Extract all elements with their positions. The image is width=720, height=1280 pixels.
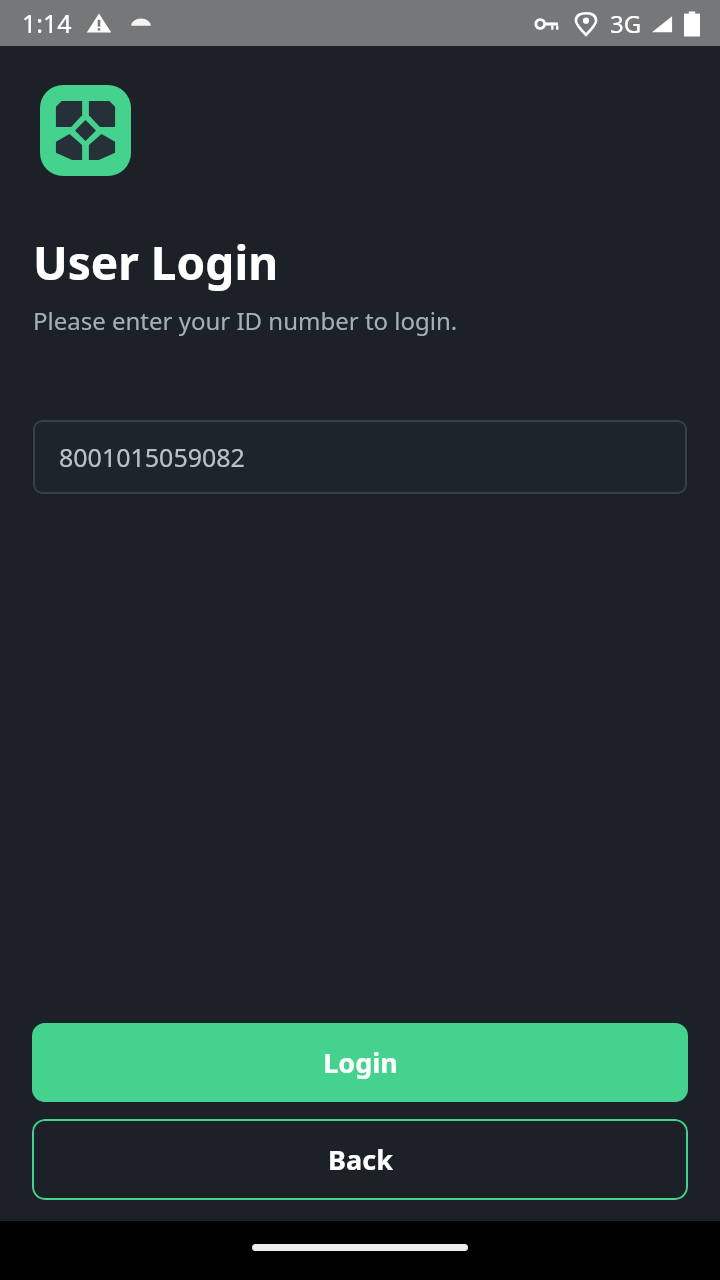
staticText: Please enter your ID number to login.: [33, 304, 458, 337]
staticText: Back: [328, 1141, 393, 1178]
staticText: 1:14: [22, 6, 72, 40]
other: App logo: [40, 85, 131, 176]
staticText: Login: [323, 1044, 398, 1081]
button[interactable]: Login: [32, 1023, 688, 1102]
button[interactable]: Back: [32, 1119, 688, 1200]
staticText: User Login: [33, 231, 279, 294]
staticText: 3G: [610, 7, 642, 40]
button[interactable]: 8001015059082: [33, 420, 687, 494]
staticText: 8001015059082: [59, 440, 245, 474]
